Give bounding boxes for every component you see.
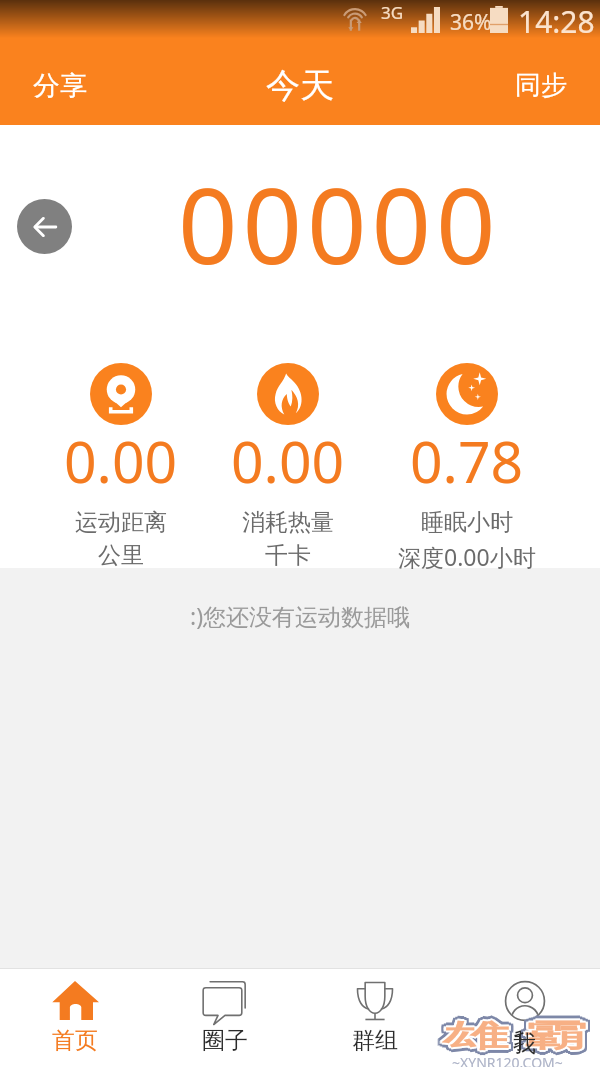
staticText: 0.00 [64,422,178,500]
staticText: 雄 [443,1017,509,1055]
staticText: 0.78 [410,422,524,500]
button[interactable]: 分享 [0,46,120,125]
staticText: 雄 [441,1015,507,1053]
staticText: 霸 [524,1013,590,1051]
staticText: 霸 [522,1019,588,1057]
staticText: 雄 [441,1020,507,1058]
staticText: 雄 [441,1019,507,1057]
staticText: 雄 [443,1013,509,1051]
staticText: 霸 [526,1017,592,1055]
staticText: 雄 [443,1020,509,1058]
staticText: 霸 [520,1015,586,1053]
staticText: 霸 [518,1015,584,1053]
staticText: 霸 [526,1020,592,1058]
staticText: 雄 [445,1018,511,1056]
staticText: 霸 [524,1018,590,1056]
staticText: 霸 [522,1019,588,1057]
staticText: 雄 [445,1015,511,1053]
staticText: 雄 [443,1015,509,1053]
staticText: 霸 [520,1016,586,1054]
staticText: 雄 [447,1017,513,1055]
staticText: 霸 [522,1017,588,1055]
staticText: 雄 [445,1013,511,1051]
staticText: 霸 [526,1015,592,1053]
staticText: 雄 [441,1017,507,1055]
button[interactable]: Back [17,199,72,254]
staticText: 雄 [441,1018,507,1056]
staticText: 霸 [522,1015,588,1053]
staticText: 雄 [447,1016,513,1054]
staticText: 雄 [443,1018,509,1056]
staticText: 霸 [524,1017,590,1055]
staticText: 同步 [515,69,567,102]
staticText: 雄 [443,1016,509,1054]
staticText: 雄 [445,1016,511,1054]
staticText: 霸 [518,1017,584,1055]
staticText: 霸 [520,1014,586,1052]
staticText: 霸 [522,1020,588,1058]
staticText: 霸 [520,1019,586,1057]
staticText: 霸 [524,1017,590,1055]
staticText: 霸 [518,1014,584,1052]
staticText: 圈子 [202,1026,248,1055]
staticText: 雄 [443,1017,509,1055]
staticText: 雄 [439,1018,505,1056]
staticText: 雄 [439,1019,505,1057]
staticText: 霸 [522,1013,588,1051]
staticText: 雄 [443,1014,509,1052]
staticText: 霸 [520,1018,586,1056]
staticText: 消耗热量 [242,508,334,537]
button[interactable]: 我 [450,968,600,1067]
staticText: 霸 [524,1015,590,1053]
button[interactable]: 圈子 [150,968,300,1067]
staticText: 霸 [522,1016,588,1054]
staticText: 雄 [447,1020,513,1058]
staticText: 雄 [447,1018,513,1056]
staticText: 霸 [520,1021,586,1059]
staticText: 雄 [445,1020,511,1058]
staticText: 分享 [33,69,87,103]
staticText: 霸 [524,1018,590,1056]
staticText: 霸 [520,1018,586,1056]
staticText: 霸 [522,1012,588,1050]
staticText: 雄 [443,1019,509,1057]
staticText: 霸 [524,1020,590,1058]
staticText: 运动距离 [75,508,167,537]
staticText: 我 [514,1026,537,1055]
staticText: 霸 [526,1016,592,1054]
staticText: 雄 [443,1017,509,1055]
staticText: 霸 [524,1016,590,1054]
staticText: 霸 [522,1022,588,1060]
staticText: 雄 [443,1018,509,1056]
staticText: 雄 [445,1017,511,1055]
staticText: 雄 [441,1016,507,1054]
staticText: 我 [513,1029,536,1058]
staticText: 雄 [441,1013,507,1051]
staticText: 36% [450,8,492,37]
button[interactable]: 首页 [0,968,150,1067]
staticText: 霸 [522,1018,588,1056]
staticText: 雄 [445,1014,511,1052]
staticText: 雄 [439,1015,505,1053]
staticText: 霸 [518,1018,584,1056]
staticText: 霸 [520,1017,586,1055]
staticText: 雄 [445,1021,511,1059]
staticText: 雄 [439,1014,505,1052]
staticText: 霸 [520,1020,586,1058]
staticText: 霸 [524,1019,590,1057]
staticText: 雄 [443,1021,509,1059]
staticText: 霸 [518,1020,584,1058]
button[interactable]: 群组 [300,968,450,1067]
staticText: 霸 [520,1017,586,1055]
button[interactable]: 同步 [481,46,600,125]
staticText: 雄 [439,1020,505,1058]
staticText: 雄 [441,1016,507,1054]
staticText: 霸 [522,1018,588,1056]
staticText: 霸 [524,1016,590,1054]
staticText: :)您还没有运动数据哦 [190,600,411,631]
staticText: 霸 [526,1018,592,1056]
staticText: 雄 [447,1019,513,1057]
staticText: 雄 [443,1012,509,1050]
staticText: 霸 [522,1015,588,1053]
staticText: 雄 [439,1017,505,1055]
